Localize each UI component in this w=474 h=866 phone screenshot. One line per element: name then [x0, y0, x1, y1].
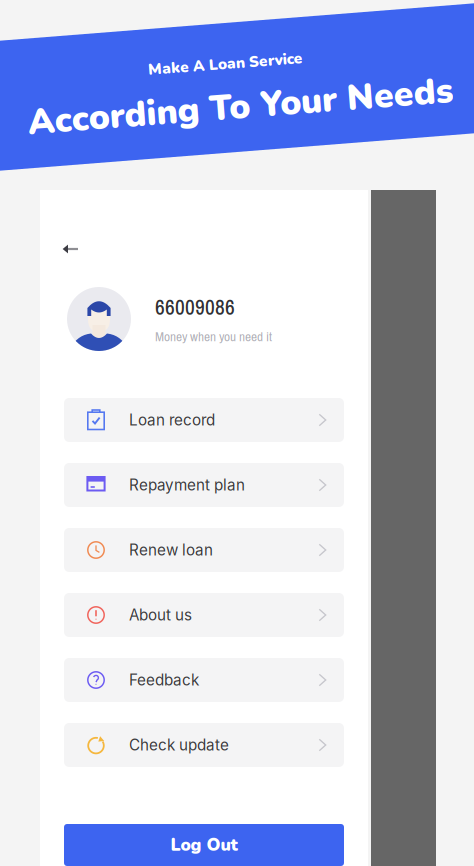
staticText: About us [129, 606, 192, 624]
button[interactable]: About us [64, 593, 344, 637]
button[interactable]: Feedback [64, 658, 344, 702]
staticText: Check update [129, 736, 229, 754]
staticText: Feedback [129, 671, 199, 689]
button[interactable]: Loan record [64, 398, 344, 442]
staticText: Loan record [129, 411, 215, 429]
staticText: Repayment plan [129, 476, 245, 494]
staticText: Make A Loan Service [150, 52, 305, 73]
staticText: Renew loan [129, 541, 213, 559]
staticText: Log Out [170, 833, 237, 857]
button[interactable]: Renew loan [64, 528, 344, 572]
button[interactable]: Log Out [64, 824, 344, 866]
button[interactable]: Check update [64, 723, 344, 767]
button[interactable]: Back [62, 239, 90, 259]
staticText: 66009086 [155, 293, 235, 321]
staticText: According To Your Needs [26, 82, 453, 130]
button[interactable]: Repayment plan [64, 463, 344, 507]
staticText: Money when you need it [155, 327, 272, 345]
